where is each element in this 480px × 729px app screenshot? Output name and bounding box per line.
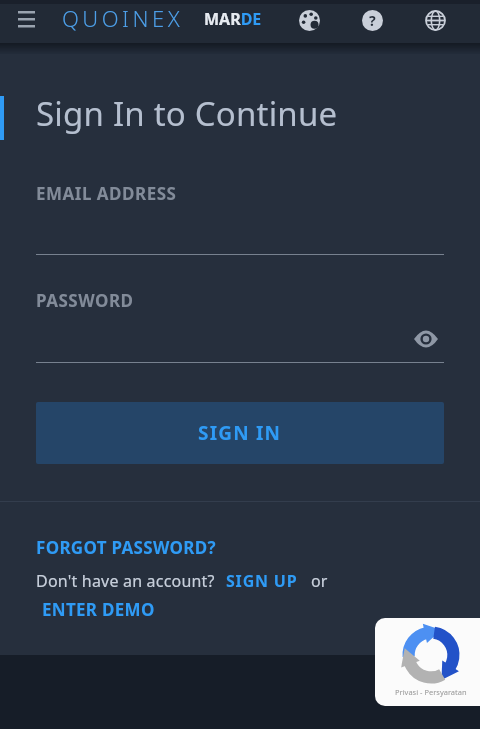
button[interactable] xyxy=(425,10,446,31)
button[interactable] xyxy=(299,10,320,31)
staticText: PASSWORD xyxy=(36,289,134,312)
button[interactable]: QUOINEX xyxy=(62,3,184,33)
staticText: Privasi - Persyaratan xyxy=(395,687,467,697)
button[interactable]: SIGN IN xyxy=(36,402,444,464)
staticText: ? xyxy=(369,11,376,30)
button[interactable]: ? xyxy=(362,10,383,31)
button[interactable]: Privasi - Persyaratan xyxy=(375,618,480,706)
staticText: SIGN IN xyxy=(198,420,282,446)
button[interactable] xyxy=(414,330,438,348)
button[interactable] xyxy=(18,11,35,28)
button[interactable]: ENTER DEMO xyxy=(42,598,155,621)
staticText: EMAIL ADDRESS xyxy=(36,182,177,205)
staticText: Don't have an account? xyxy=(36,570,215,592)
button[interactable]: FORGOT PASSWORD? xyxy=(36,536,216,559)
staticText: Sign In to Continue xyxy=(36,91,338,136)
staticText: MARDE xyxy=(204,8,262,30)
button[interactable]: SIGN UP xyxy=(226,570,298,592)
staticText: or xyxy=(311,570,328,592)
